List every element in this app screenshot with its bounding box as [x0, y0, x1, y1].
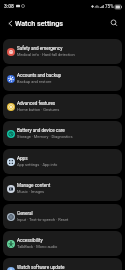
button[interactable]: General: [3, 204, 122, 229]
staticText: Music · Images: [17, 189, 45, 194]
staticText: Accessibility: [17, 238, 43, 243]
staticText: Accounts and backup: [17, 73, 62, 78]
button[interactable]: Advanced features: [3, 94, 122, 119]
button[interactable]: Navigate up: [3, 16, 17, 30]
button[interactable]: Accounts and backup: [3, 66, 122, 91]
button[interactable]: Safety and emergency: [3, 39, 122, 64]
staticText: Safety and emergency: [17, 46, 63, 51]
button[interactable]: Battery and device care: [3, 121, 122, 146]
staticText: Input · Text-to-speech · Reset: [17, 217, 69, 222]
staticText: Apps: [17, 156, 28, 161]
staticText: Battery and device care: [17, 128, 65, 133]
button[interactable]: Search: [107, 16, 121, 30]
staticText: Watch settings: [15, 19, 63, 27]
button[interactable]: Manage content: [3, 176, 122, 201]
staticText: General: [17, 211, 33, 216]
button[interactable]: Apps: [3, 149, 122, 174]
staticText: Backup and restore: [17, 79, 52, 84]
staticText: Storage · Memory · Diagnostics: [17, 134, 73, 139]
staticText: TalkBack · Mono audio: [17, 244, 58, 249]
staticText: 75%: [105, 4, 114, 9]
staticText: Advanced features: [17, 101, 56, 106]
staticText: Home button · Gestures: [17, 107, 60, 112]
staticText: 3:08: [4, 3, 14, 9]
button[interactable]: Watch software update: [3, 258, 122, 270]
staticText: Watch software update: [17, 265, 65, 270]
staticText: Manage content: [17, 183, 51, 188]
staticText: App settings · App info: [17, 162, 58, 167]
staticText: Medical info · Hard fall detection: [17, 52, 75, 57]
button[interactable]: Accessibility: [3, 231, 122, 256]
